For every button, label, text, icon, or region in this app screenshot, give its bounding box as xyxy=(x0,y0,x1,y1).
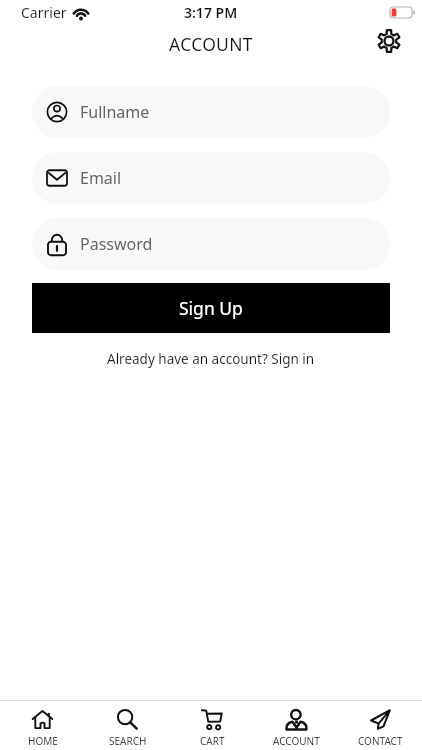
button[interactable]: Sign Up xyxy=(32,283,390,333)
button[interactable]: Already have an account? Sign in xyxy=(0,350,422,368)
staticText: Sign Up xyxy=(179,296,243,320)
staticText: Carrier xyxy=(21,3,67,22)
button[interactable]: ACCOUNT xyxy=(254,701,338,750)
button[interactable]: SEARCH xyxy=(85,701,170,750)
staticText: 3:17 PM xyxy=(184,3,238,22)
staticText: ACCOUNT xyxy=(169,32,253,56)
staticText: Already have an account? Sign in xyxy=(107,350,315,368)
staticText: Password xyxy=(80,233,153,255)
button[interactable]: Email xyxy=(32,152,390,204)
staticText: Email xyxy=(80,167,122,189)
button[interactable]: CONTACT xyxy=(338,701,422,750)
staticText: CART xyxy=(200,734,225,748)
button[interactable]: CART xyxy=(170,701,254,750)
staticText: ACCOUNT xyxy=(273,734,320,748)
button[interactable]: Password xyxy=(32,218,390,270)
button[interactable]: Fullname xyxy=(32,86,390,138)
button[interactable] xyxy=(376,28,402,54)
staticText: HOME xyxy=(28,734,58,748)
staticText: SEARCH xyxy=(109,734,147,748)
staticText: CONTACT xyxy=(358,734,403,748)
staticText: Fullname xyxy=(80,101,150,123)
button[interactable]: HOME xyxy=(0,701,85,750)
